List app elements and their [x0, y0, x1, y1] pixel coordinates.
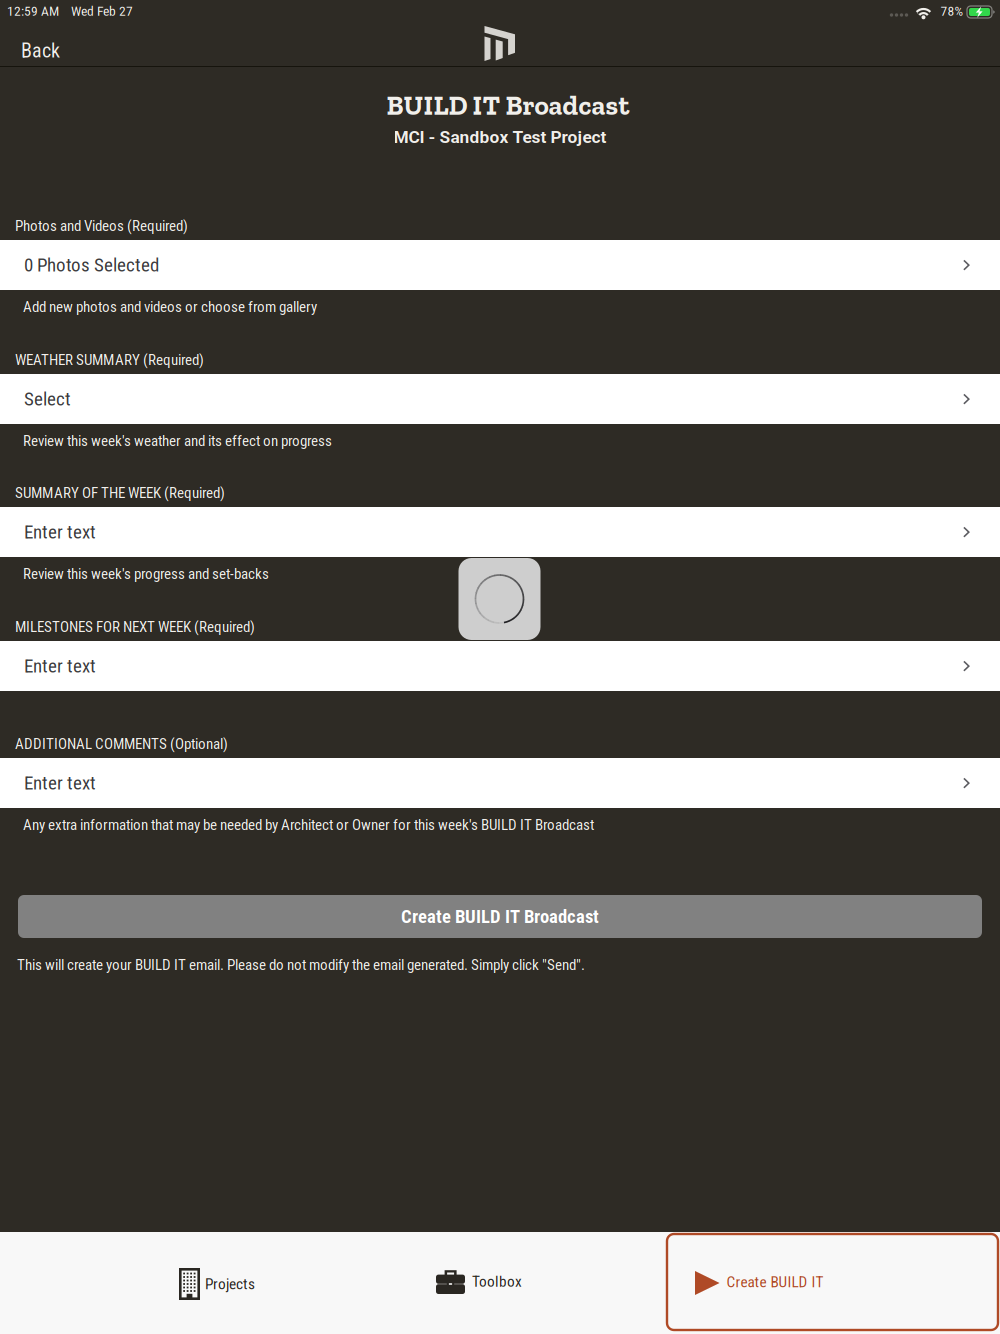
staticText: Select [24, 388, 71, 410]
button[interactable]: Projects [165, 1246, 269, 1322]
staticText: Wed Feb 27 [71, 3, 133, 19]
staticText: MILESTONES FOR NEXT WEEK (Required) [15, 618, 255, 636]
staticText: Review this week's weather and its effec… [23, 432, 332, 450]
staticText: ADDITIONAL COMMENTS (Optional) [15, 735, 228, 753]
staticText: 0 Photos Selected [24, 254, 159, 276]
staticText: Enter text [24, 521, 96, 543]
button[interactable]: Enter text [0, 758, 1000, 808]
staticText: SUMMARY OF THE WEEK (Required) [15, 484, 225, 502]
button[interactable]: Create BUILD IT Broadcast [18, 895, 982, 938]
staticText: This will create your BUILD IT email. Pl… [17, 956, 585, 974]
staticText: Review this week's progress and set-back… [23, 565, 269, 583]
staticText: Any extra information that may be needed… [23, 816, 594, 834]
staticText: Photos and Videos (Required) [15, 217, 188, 235]
staticText: Back [21, 39, 60, 62]
staticText: Enter text [24, 655, 96, 677]
button[interactable]: Enter text [0, 641, 1000, 691]
staticText: Add new photos and videos or choose from… [23, 298, 317, 316]
button[interactable]: 0 Photos Selected [0, 240, 1000, 290]
staticText: 78% [940, 3, 963, 19]
button[interactable]: Enter text [0, 507, 1000, 557]
staticText: Enter text [24, 772, 96, 794]
staticText: Create BUILD IT [726, 1273, 823, 1291]
button[interactable]: Back [0, 27, 81, 74]
staticText: 12:59 AM [7, 3, 59, 19]
button[interactable]: Toolbox [422, 1244, 536, 1319]
staticText: Projects [205, 1275, 255, 1293]
staticText: BUILD IT Broadcast [386, 89, 629, 122]
staticText: Create BUILD IT Broadcast [401, 906, 599, 927]
staticText: Toolbox [472, 1272, 522, 1290]
button[interactable]: Create BUILD IT [667, 1234, 998, 1330]
button[interactable]: Select [0, 374, 1000, 424]
staticText: MCI - Sandbox Test Project [393, 127, 606, 147]
staticText: WEATHER SUMMARY (Required) [15, 351, 204, 369]
